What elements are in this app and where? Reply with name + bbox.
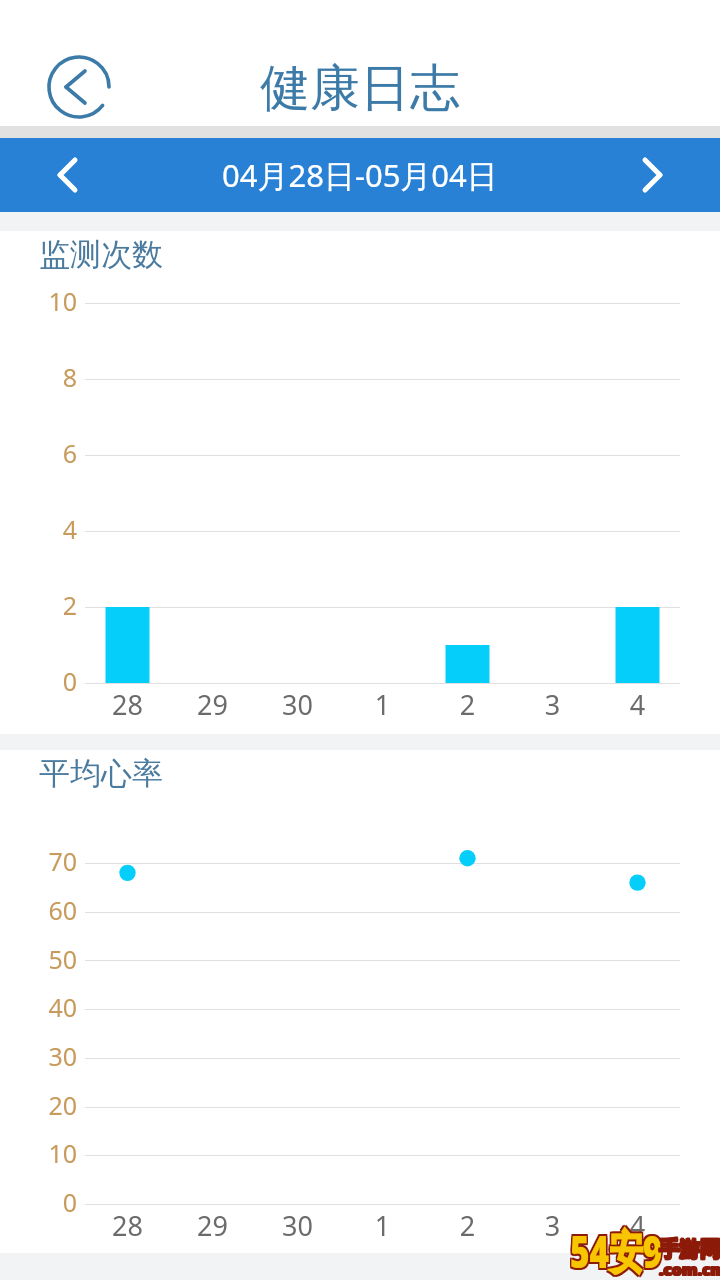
staticText: 3 xyxy=(510,686,595,723)
staticText: 04月28日-05月04日 xyxy=(222,154,498,196)
staticText: 54安9 xyxy=(568,1220,661,1280)
staticText: 54安9 xyxy=(571,1220,664,1280)
staticText: 4 xyxy=(595,686,680,723)
staticText: .com.cn xyxy=(659,1258,720,1279)
staticText: 60 xyxy=(11,893,77,927)
staticText: 手游网 xyxy=(659,1237,720,1262)
staticText: 30 xyxy=(255,1207,340,1244)
staticText: 3 xyxy=(510,1207,595,1244)
staticText: 手游网 xyxy=(658,1237,719,1262)
staticText: 54安9 xyxy=(570,1218,663,1279)
staticText: 手游网 xyxy=(660,1237,720,1262)
staticText: 手游网 xyxy=(658,1236,719,1261)
staticText: 29 xyxy=(170,686,255,723)
staticText: .com.cn xyxy=(659,1259,720,1280)
staticText: 手游网 xyxy=(659,1238,720,1263)
staticText: 4 xyxy=(11,512,77,546)
staticText: .com.cn xyxy=(658,1260,720,1280)
button[interactable]: Average heart rate chart xyxy=(0,750,720,1253)
staticText: 平均心率 xyxy=(39,754,163,793)
button[interactable]: Monitoring count chart xyxy=(0,231,720,734)
staticText: .com.cn xyxy=(660,1260,720,1280)
staticText: 4 xyxy=(595,1207,680,1244)
staticText: 54安9 xyxy=(568,1218,661,1279)
staticText: 28 xyxy=(85,686,170,723)
staticText: .com.cn xyxy=(660,1259,720,1280)
staticText: .com.cn xyxy=(658,1258,720,1279)
button[interactable]: Next week xyxy=(590,138,720,212)
staticText: 健康日志 xyxy=(260,57,460,120)
staticText: 40 xyxy=(11,990,77,1024)
staticText: 10 xyxy=(11,284,77,318)
staticText: 50 xyxy=(11,942,77,976)
staticText: 手游网 xyxy=(660,1236,720,1261)
staticText: 30 xyxy=(255,686,340,723)
staticText: 54安9 xyxy=(570,1222,663,1280)
staticText: 2 xyxy=(425,686,510,723)
staticText: 70 xyxy=(11,844,77,878)
staticText: 8 xyxy=(11,360,77,394)
staticText: 54安9 xyxy=(568,1222,661,1280)
staticText: 54安9 xyxy=(571,1218,664,1279)
staticText: 监测次数 xyxy=(39,235,163,274)
staticText: 2 xyxy=(425,1207,510,1244)
staticText: 0 xyxy=(11,1185,77,1219)
staticText: 54安9 xyxy=(571,1222,664,1280)
staticText: 30 xyxy=(11,1039,77,1073)
staticText: 手游网 xyxy=(660,1238,720,1263)
staticText: 手游网 xyxy=(659,1236,720,1261)
staticText: 1 xyxy=(340,1207,425,1244)
staticText: 20 xyxy=(11,1088,77,1122)
staticText: 28 xyxy=(85,1207,170,1244)
staticText: 6 xyxy=(11,436,77,470)
staticText: 0 xyxy=(11,664,77,698)
staticText: 2 xyxy=(11,588,77,622)
staticText: 手游网 xyxy=(658,1238,719,1263)
button[interactable]: Back xyxy=(45,53,113,121)
staticText: 10 xyxy=(11,1136,77,1170)
staticText: .com.cn xyxy=(660,1258,720,1279)
staticText: 54安9 xyxy=(570,1220,663,1280)
staticText: 1 xyxy=(340,686,425,723)
staticText: 29 xyxy=(170,1207,255,1244)
staticText: .com.cn xyxy=(659,1260,720,1280)
button[interactable]: Previous week xyxy=(0,138,130,212)
staticText: .com.cn xyxy=(658,1259,720,1280)
